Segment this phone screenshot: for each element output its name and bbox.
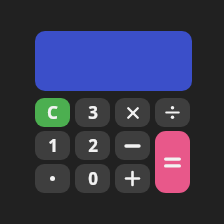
button[interactable]: Multiply [115,98,150,127]
staticText: 2 [88,134,98,157]
staticText: 0 [88,167,98,190]
button[interactable]: Minus [115,131,150,160]
button[interactable]: C [35,98,70,127]
button[interactable]: 2 [75,131,110,160]
button[interactable]: Equals [155,131,190,193]
button[interactable]: Plus [115,164,150,193]
button[interactable]: Decimal point [35,164,70,193]
staticText: 1 [48,134,58,157]
button[interactable]: Display [35,31,192,91]
button[interactable]: 3 [75,98,110,127]
staticText: C [47,101,58,124]
button[interactable]: 1 [35,131,70,160]
button[interactable]: 0 [75,164,110,193]
button[interactable]: Divide [155,98,190,127]
staticText: 3 [88,101,98,124]
